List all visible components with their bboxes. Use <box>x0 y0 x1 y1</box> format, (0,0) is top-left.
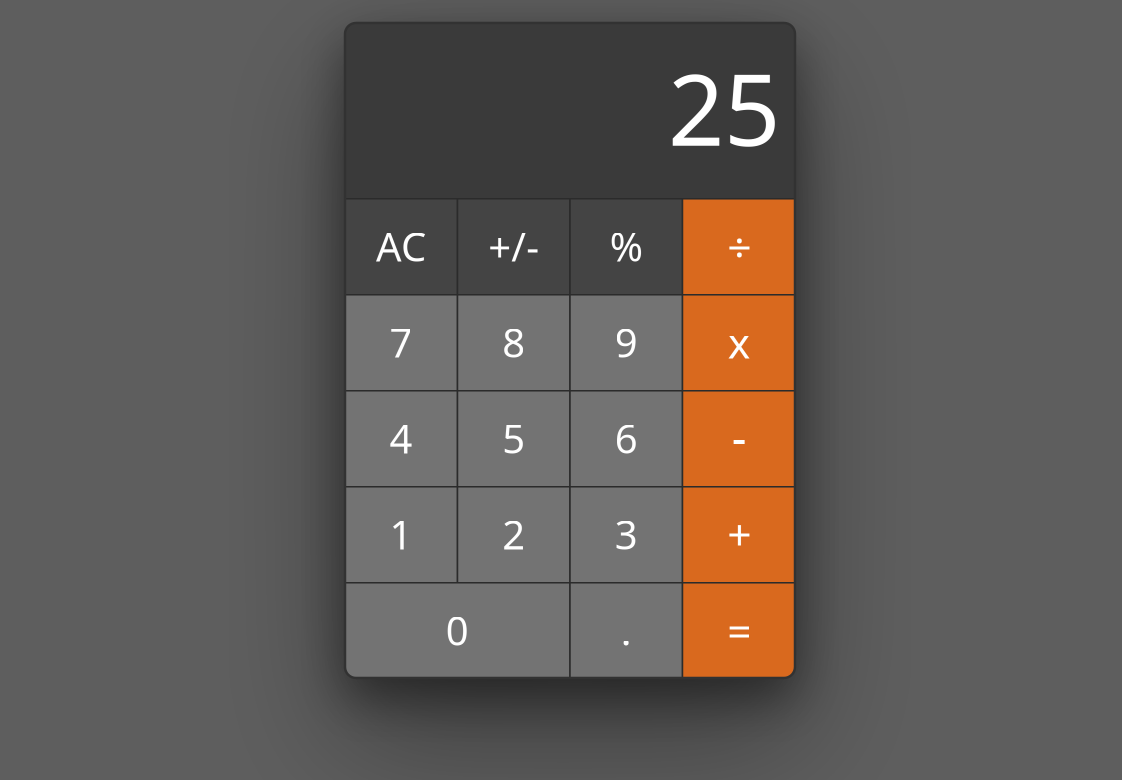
button[interactable]: 6 <box>571 390 682 486</box>
staticText: ÷ <box>727 218 751 274</box>
staticText: . <box>621 603 632 656</box>
staticText: 8 <box>502 315 525 368</box>
staticText: 2 <box>502 507 525 560</box>
button[interactable]: Multiply <box>683 294 795 390</box>
button[interactable]: Decimal point <box>571 582 682 678</box>
button[interactable]: 3 <box>571 486 682 582</box>
button[interactable]: 0 <box>345 582 569 678</box>
staticText: 1 <box>389 507 412 560</box>
staticText: 7 <box>389 315 412 368</box>
staticText: 5 <box>502 411 525 464</box>
staticText: +/- <box>488 219 539 272</box>
staticText: 0 <box>446 603 469 656</box>
button[interactable]: Plus <box>683 486 795 582</box>
staticText: % <box>610 219 643 272</box>
staticText: 6 <box>615 411 638 464</box>
button[interactable]: 5 <box>458 390 569 486</box>
button[interactable]: Percent <box>571 198 682 294</box>
button[interactable]: Equals <box>683 582 795 678</box>
staticText: x <box>728 314 751 370</box>
button[interactable]: All clear <box>345 198 457 294</box>
button[interactable]: 7 <box>345 294 457 390</box>
staticText: 3 <box>615 507 638 560</box>
button[interactable]: 2 <box>458 486 569 582</box>
staticText: 9 <box>615 315 638 368</box>
button[interactable]: 1 <box>345 486 457 582</box>
staticText: = <box>727 602 751 658</box>
button[interactable]: Minus <box>683 390 795 486</box>
button[interactable]: 9 <box>571 294 682 390</box>
staticText: 25 <box>668 42 780 173</box>
staticText: 4 <box>389 411 412 464</box>
button[interactable]: Divide <box>683 198 795 294</box>
staticText: AC <box>376 219 426 272</box>
button[interactable]: 4 <box>345 390 457 486</box>
button[interactable]: Plus minus <box>458 198 569 294</box>
staticText: + <box>727 506 751 562</box>
button[interactable]: 8 <box>458 294 569 390</box>
